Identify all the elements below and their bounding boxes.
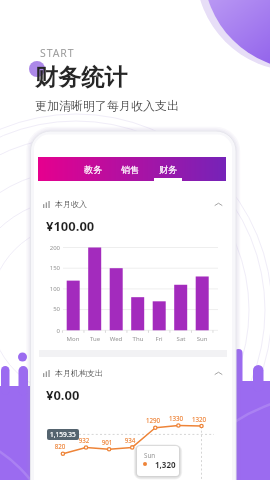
staticText: 1330 [164, 414, 188, 422]
staticText: 1,159.35 [50, 430, 76, 439]
staticText: 0 [40, 327, 60, 335]
button[interactable]: 本月机构支出 [43, 368, 223, 378]
staticText: 901 [95, 438, 119, 446]
staticText: 150 [40, 264, 60, 272]
staticText: 更加清晰明了每月收入支出 [35, 98, 179, 113]
button[interactable]: 财务 [154, 157, 182, 181]
staticText: 财务统计 [35, 63, 127, 92]
button[interactable]: 销售 [116, 157, 144, 181]
staticText: ¥0.00 [46, 386, 80, 404]
staticText: START [40, 46, 75, 60]
staticText: Fri [148, 335, 170, 343]
staticText: ¥100.00 [46, 217, 95, 235]
staticText: 1,320 [155, 459, 176, 470]
staticText: 财务 [159, 164, 177, 175]
staticText: 820 [48, 442, 72, 450]
staticText: 1290 [141, 416, 165, 424]
staticText: 本月收入 [55, 199, 87, 209]
staticText: Tue [84, 335, 106, 343]
button[interactable]: 本月收入 [43, 199, 223, 209]
staticText: 1320 [187, 415, 211, 423]
staticText: 100 [40, 285, 60, 293]
staticText: Sun [144, 451, 156, 459]
staticText: Wed [105, 335, 127, 343]
staticText: Sun [191, 335, 213, 343]
staticText: 932 [72, 436, 96, 444]
staticText: 50 [40, 305, 60, 313]
staticText: 200 [40, 244, 60, 252]
other: Collapse [214, 369, 223, 378]
other: Collapse [214, 200, 223, 209]
button[interactable]: 教务 [79, 157, 107, 181]
staticText: 销售 [121, 164, 139, 175]
staticText: Thu [127, 335, 149, 343]
staticText: 本月机构支出 [55, 368, 103, 378]
staticText: Sat [170, 335, 192, 343]
staticText: 934 [118, 436, 142, 444]
staticText: Mon [62, 335, 84, 343]
staticText: 教务 [84, 164, 102, 175]
